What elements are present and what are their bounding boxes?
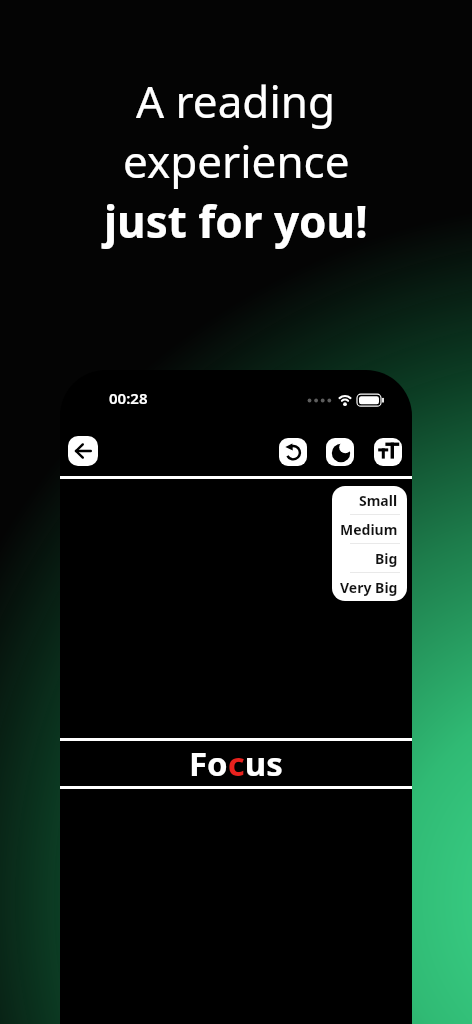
staticText: Very Big (340, 578, 398, 597)
staticText: 00:28 (109, 388, 148, 406)
button[interactable] (374, 438, 402, 466)
staticText: A reading (136, 71, 336, 131)
staticText: Medium (340, 520, 398, 539)
staticText: Focus (189, 741, 283, 786)
button[interactable]: Medium (332, 515, 407, 543)
button[interactable] (68, 436, 98, 466)
staticText: experience (123, 131, 350, 191)
staticText: Small (359, 491, 398, 510)
button[interactable]: Big (332, 544, 407, 572)
button[interactable]: Small (332, 486, 407, 514)
button[interactable] (326, 438, 354, 466)
staticText: Big (375, 549, 398, 568)
staticText: just for you! (104, 191, 368, 251)
button[interactable]: Very Big (332, 573, 407, 601)
button[interactable] (279, 438, 307, 466)
